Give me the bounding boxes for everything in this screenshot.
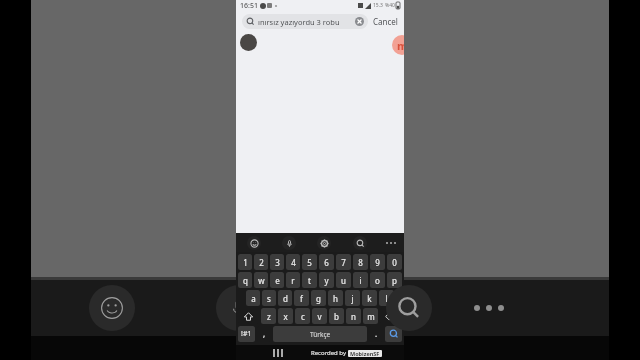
staticText: s bbox=[267, 293, 271, 304]
button[interactable]: z bbox=[261, 308, 276, 324]
staticText: f bbox=[300, 293, 303, 304]
button[interactable]: Search bbox=[385, 326, 402, 342]
staticText: ınırsız yazıyordu 3 robu bbox=[258, 17, 340, 27]
button[interactable]: f bbox=[294, 290, 309, 306]
button[interactable]: s bbox=[262, 290, 276, 306]
button[interactable]: w bbox=[254, 272, 268, 288]
button[interactable]: a bbox=[246, 290, 260, 306]
staticText: 16:51 bbox=[240, 1, 258, 11]
button[interactable]: b bbox=[329, 308, 344, 324]
button[interactable]: e bbox=[270, 272, 284, 288]
button[interactable]: . bbox=[369, 326, 383, 342]
staticText: w bbox=[258, 275, 265, 286]
button[interactable]: Emoji bbox=[89, 285, 135, 331]
button[interactable]: j bbox=[345, 290, 360, 306]
staticText: , bbox=[263, 328, 266, 339]
staticText: y bbox=[324, 275, 329, 286]
staticText: 15.3 bbox=[373, 2, 383, 9]
staticText: r bbox=[291, 275, 295, 286]
button[interactable]: h bbox=[328, 290, 343, 306]
button[interactable]: Voice input bbox=[282, 236, 296, 250]
button[interactable]: Shift bbox=[238, 308, 259, 324]
staticText: q bbox=[243, 275, 248, 286]
button[interactable]: 8 bbox=[353, 254, 368, 270]
button[interactable]: Search bbox=[386, 285, 432, 331]
button[interactable]: Clear bbox=[355, 17, 364, 26]
button[interactable]: 2 bbox=[254, 254, 268, 270]
button[interactable]: Backspace bbox=[380, 308, 402, 324]
button[interactable]: 4 bbox=[286, 254, 300, 270]
staticText: e bbox=[275, 275, 280, 286]
staticText: m bbox=[397, 38, 408, 53]
staticText: 9 bbox=[375, 257, 380, 268]
button[interactable]: r bbox=[286, 272, 300, 288]
staticText: v bbox=[317, 311, 322, 322]
staticText: !#1 bbox=[241, 329, 252, 339]
button[interactable]: v bbox=[312, 308, 327, 324]
button[interactable]: l bbox=[379, 290, 394, 306]
button[interactable]: t bbox=[302, 272, 317, 288]
staticText: 0 bbox=[392, 257, 397, 268]
staticText: Recorded by bbox=[311, 349, 348, 357]
button[interactable]: k bbox=[362, 290, 377, 306]
staticText: %40 bbox=[385, 2, 395, 9]
staticText: 3 bbox=[275, 257, 280, 268]
button[interactable]: y bbox=[319, 272, 334, 288]
button[interactable]: Emoji bbox=[247, 236, 261, 250]
button[interactable]: 6 bbox=[319, 254, 334, 270]
staticText: 2 bbox=[259, 257, 264, 268]
staticText: x bbox=[283, 311, 288, 322]
staticText: j bbox=[351, 293, 354, 304]
staticText: MobizenSF bbox=[350, 350, 380, 357]
staticText: 1 bbox=[243, 257, 248, 268]
button[interactable]: n bbox=[346, 308, 361, 324]
button[interactable]: q bbox=[238, 272, 252, 288]
staticText: u bbox=[341, 275, 346, 286]
button[interactable]: u bbox=[336, 272, 351, 288]
staticText: l bbox=[385, 293, 388, 304]
button[interactable]: o bbox=[370, 272, 385, 288]
staticText: o bbox=[375, 275, 380, 286]
button[interactable]: Search bbox=[353, 236, 367, 250]
staticText: 6 bbox=[324, 257, 329, 268]
staticText: 5 bbox=[307, 257, 312, 268]
staticText: a bbox=[251, 293, 256, 304]
button[interactable]: 0 bbox=[387, 254, 402, 270]
button[interactable]: !#1 bbox=[238, 326, 255, 342]
staticText: h bbox=[333, 293, 338, 304]
staticText: 7 bbox=[341, 257, 346, 268]
staticText: Cancel bbox=[373, 16, 398, 27]
button[interactable]: Türkçe bbox=[273, 326, 367, 342]
button[interactable]: , bbox=[257, 326, 271, 342]
button[interactable]: 7 bbox=[336, 254, 351, 270]
staticText: z bbox=[267, 311, 271, 322]
button[interactable]: p bbox=[387, 272, 402, 288]
staticText: p bbox=[392, 275, 397, 286]
button[interactable]: More options bbox=[378, 233, 404, 252]
button[interactable]: Account bbox=[392, 35, 412, 55]
button[interactable]: 5 bbox=[302, 254, 317, 270]
staticText: i bbox=[359, 275, 362, 286]
button[interactable]: g bbox=[311, 290, 326, 306]
button[interactable]: c bbox=[295, 308, 310, 324]
staticText: m bbox=[367, 311, 375, 322]
button[interactable]: 1 bbox=[238, 254, 252, 270]
button[interactable]: ınırsız yazıyordu 3 robu bbox=[242, 14, 368, 29]
button[interactable]: Profile photo bbox=[240, 34, 257, 51]
staticText: n bbox=[351, 311, 356, 322]
button[interactable]: d bbox=[278, 290, 292, 306]
staticText: Türkçe bbox=[310, 330, 331, 339]
button[interactable]: 9 bbox=[370, 254, 385, 270]
button[interactable]: Settings bbox=[317, 236, 331, 250]
staticText: k bbox=[367, 293, 372, 304]
button[interactable]: m bbox=[363, 308, 378, 324]
button[interactable]: Voice input bbox=[216, 285, 262, 331]
button[interactable]: i bbox=[353, 272, 368, 288]
button[interactable]: Cancel bbox=[373, 16, 398, 27]
staticText: g bbox=[316, 293, 321, 304]
staticText: c bbox=[301, 311, 305, 322]
staticText: t bbox=[308, 275, 311, 286]
staticText: d bbox=[283, 293, 288, 304]
button[interactable]: 3 bbox=[270, 254, 284, 270]
button[interactable]: x bbox=[278, 308, 293, 324]
